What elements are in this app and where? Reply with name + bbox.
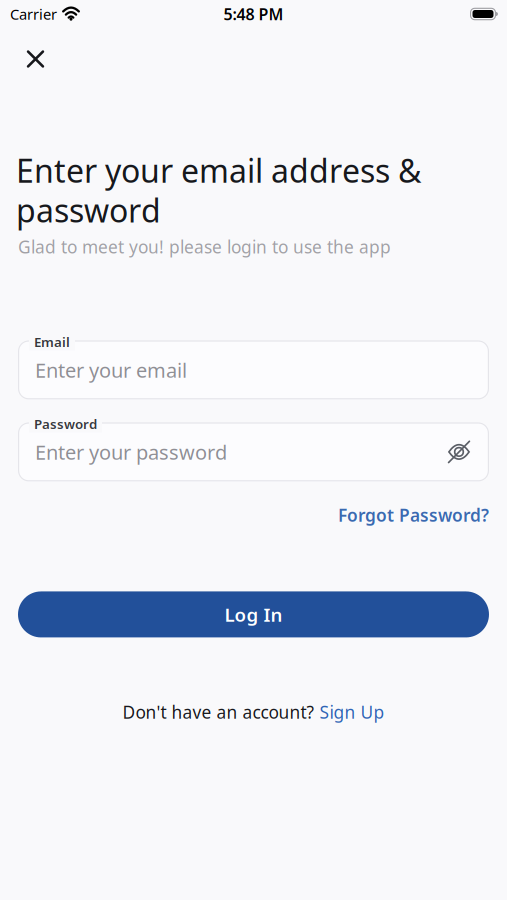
staticText: Log In — [224, 602, 282, 627]
staticText: Enter your password — [35, 439, 227, 465]
staticText: Enter your email — [35, 357, 187, 383]
staticText: Sign Up — [319, 700, 384, 723]
button[interactable]: Log In — [18, 591, 489, 637]
staticText: Password — [34, 415, 97, 433]
staticText: 5:48 PM — [223, 3, 283, 25]
staticText: Carrier — [10, 4, 57, 24]
staticText: Enter your email address & — [16, 149, 421, 191]
button[interactable]: Show password — [448, 443, 470, 460]
button[interactable]: Close — [21, 45, 49, 73]
staticText: Glad to meet you! please login to use th… — [18, 235, 391, 258]
staticText: Email — [34, 333, 70, 351]
staticText: password — [16, 189, 161, 231]
staticText: Forgot Password? — [338, 503, 489, 526]
button[interactable]: Forgot Password? — [338, 503, 489, 526]
staticText: Don't have an account? — [122, 700, 319, 723]
button[interactable]: Sign Up — [319, 700, 384, 723]
